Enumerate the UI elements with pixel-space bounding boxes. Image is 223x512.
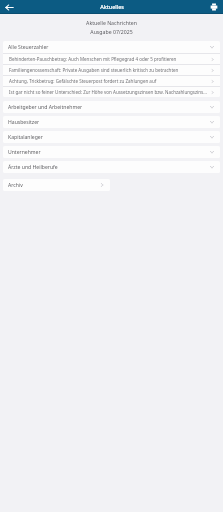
staticText: Alle Steuerzahler	[8, 44, 209, 51]
button[interactable]: Familiengenossenschaft: Private Ausgaben…	[3, 65, 220, 75]
button[interactable]: Ärzte und Heilberufe	[3, 161, 220, 173]
button[interactable]: Unternehmer	[3, 146, 220, 158]
staticText: Arbeitgeber und Arbeitnehmer	[8, 104, 209, 111]
button[interactable]: Back	[3, 1, 15, 13]
staticText: Aktuelles	[100, 3, 124, 10]
staticText: Kapitalanleger	[8, 134, 209, 141]
staticText: Unternehmer	[8, 149, 209, 156]
staticText: Aktuelle Nachrichten	[0, 19, 223, 26]
button[interactable]: Kapitalanleger	[3, 131, 220, 143]
button[interactable]: Print	[208, 1, 220, 13]
staticText: Familiengenossenschaft: Private Ausgaben…	[9, 67, 208, 73]
button[interactable]: Behinderten-Pauschbetrag: Auch Menschen …	[3, 54, 220, 64]
staticText: Achtung, Trickbetrug: Gefälschte Steuerp…	[9, 78, 208, 84]
staticText: Archiv	[8, 182, 99, 189]
staticText: Ärzte und Heilberufe	[8, 164, 209, 171]
staticText: Ausgabe 07/2025	[0, 28, 223, 35]
button[interactable]: Arbeitgeber und Arbeitnehmer	[3, 101, 220, 113]
button[interactable]: Hausbesitzer	[3, 116, 220, 128]
button[interactable]: Archiv	[3, 179, 110, 191]
staticText: Behinderten-Pauschbetrag: Auch Menschen …	[9, 56, 208, 62]
button[interactable]: Achtung, Trickbetrug: Gefälschte Steuerp…	[3, 76, 220, 86]
staticText: Hausbesitzer	[8, 119, 209, 126]
button[interactable]: Alle Steuerzahler	[3, 41, 220, 53]
button[interactable]: Ist gar nicht so feiner Unterschied: Zur…	[3, 87, 220, 97]
staticText: Ist gar nicht so feiner Unterschied: Zur…	[9, 89, 208, 95]
